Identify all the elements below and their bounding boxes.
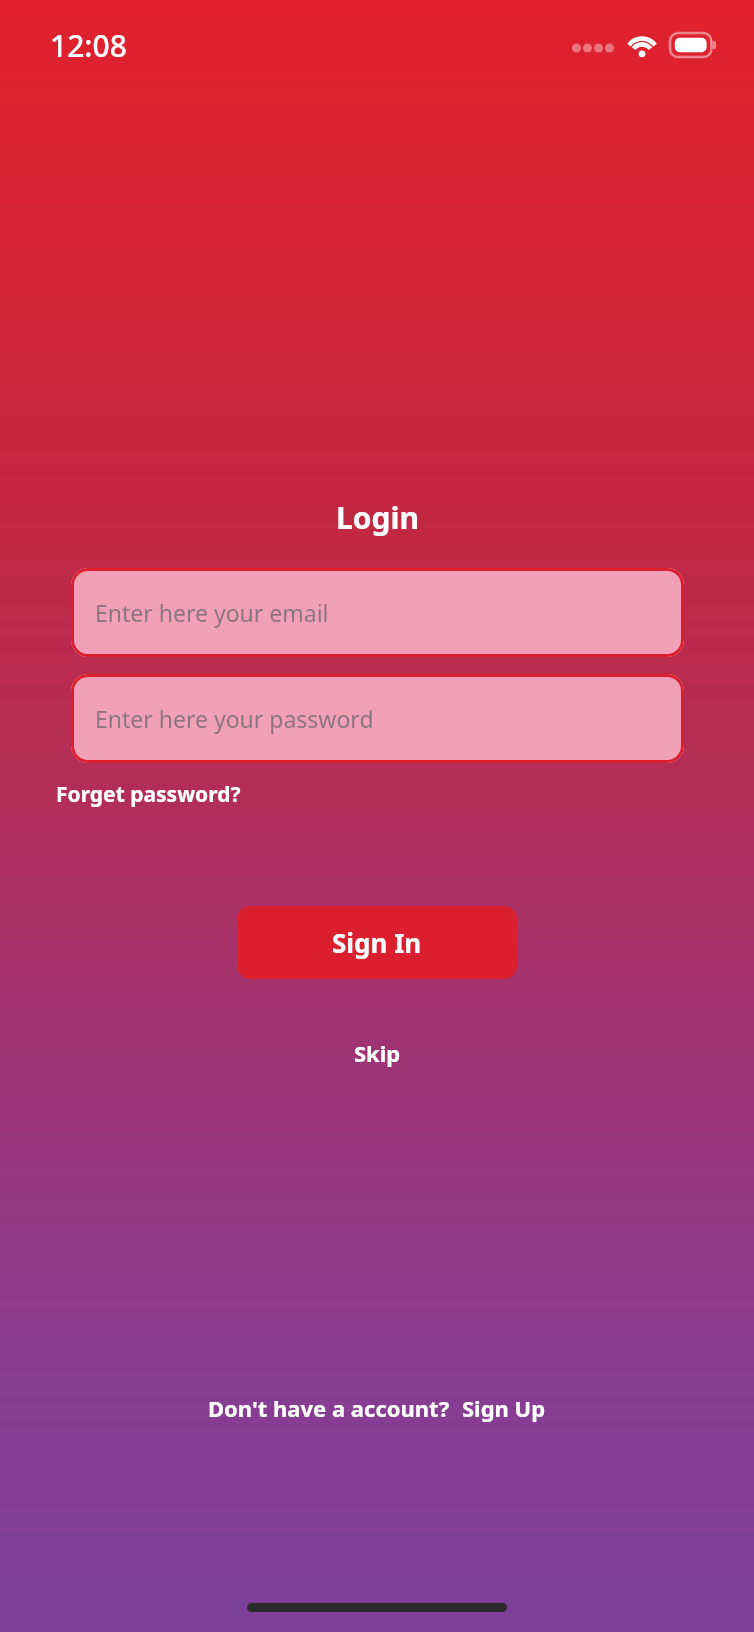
staticText: 12:08 xyxy=(50,25,127,66)
staticText: Enter here your email xyxy=(95,597,329,628)
other: Wi-Fi xyxy=(625,32,659,58)
staticText: Don't have a account? xyxy=(208,1393,450,1423)
other: Cellular signal xyxy=(572,38,614,52)
button[interactable]: Skip xyxy=(344,1034,411,1072)
other: Battery full xyxy=(670,33,716,57)
button[interactable]: Forget password? xyxy=(56,778,241,811)
staticText: Sign Up xyxy=(462,1393,546,1423)
staticText: Enter here your password xyxy=(95,703,374,734)
button[interactable]: Sign Up xyxy=(462,1393,546,1423)
staticText: Sign In xyxy=(332,925,422,960)
button[interactable]: Sign In xyxy=(237,906,517,979)
staticText: Forget password? xyxy=(56,780,241,809)
button[interactable]: Enter here your email xyxy=(71,568,684,657)
staticText: Login xyxy=(336,497,419,538)
button[interactable]: Enter here your password xyxy=(71,674,684,763)
staticText: Skip xyxy=(354,1038,401,1068)
